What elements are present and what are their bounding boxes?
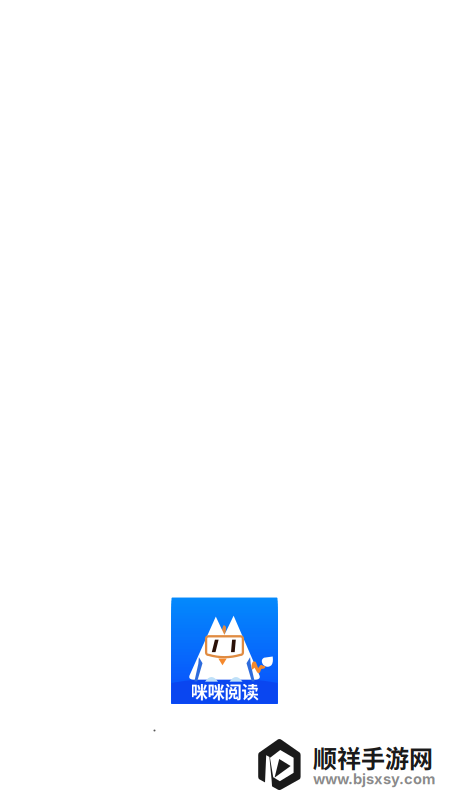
staticText: 顺祥手游网 <box>313 740 433 774</box>
button[interactable]: 咪咪阅读 <box>171 597 277 703</box>
staticText: www.bjsxsy.com <box>313 770 435 788</box>
staticText: 咪咪阅读 <box>190 678 258 704</box>
